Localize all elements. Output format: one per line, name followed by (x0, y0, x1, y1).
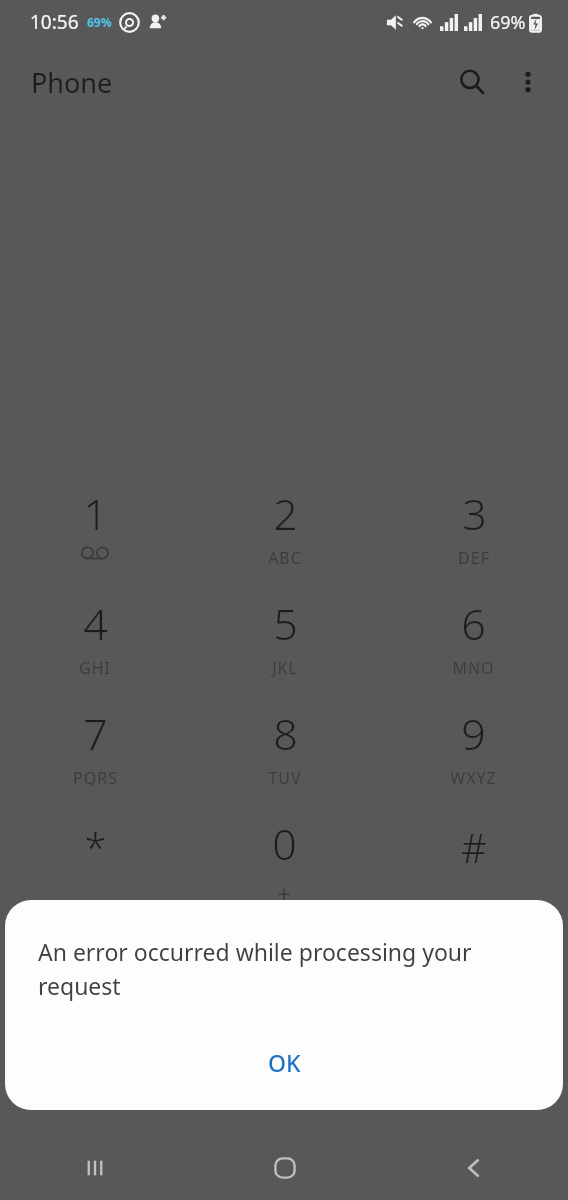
staticText: DEF (458, 547, 490, 569)
staticText: 1 (83, 484, 108, 543)
button[interactable]: 7 (0, 688, 190, 798)
button[interactable]: 2 (190, 468, 379, 578)
staticText: An error occurred while processing your … (38, 936, 503, 1001)
staticText: MNO (452, 657, 495, 679)
staticText: PQRS (73, 767, 118, 789)
staticText: * (84, 820, 107, 874)
staticText: 3 (462, 484, 487, 543)
staticText: 4 (83, 594, 108, 653)
button[interactable]: Home (190, 1135, 379, 1200)
button[interactable]: More options (500, 54, 556, 110)
staticText: 69% (490, 10, 526, 35)
staticText: Phone (31, 64, 113, 101)
staticText: GHI (79, 657, 111, 679)
button[interactable]: 8 (190, 688, 379, 798)
button[interactable]: 0 (190, 798, 379, 908)
staticText: TUV (268, 767, 302, 789)
staticText: 8 (273, 704, 298, 763)
button[interactable]: Recent apps (0, 1135, 190, 1200)
button[interactable]: * (0, 798, 190, 908)
staticText: # (461, 820, 487, 874)
staticText: 10:56 (30, 9, 79, 35)
button[interactable]: 9 (379, 688, 568, 798)
button[interactable]: OK (240, 1037, 329, 1088)
staticText: 9 (461, 704, 486, 763)
staticText: 0 (272, 814, 297, 873)
button[interactable]: 5 (190, 578, 379, 688)
button[interactable]: Search (444, 54, 500, 110)
button[interactable]: Back (379, 1135, 568, 1200)
button[interactable]: # (379, 798, 568, 908)
staticText: 5 (273, 594, 298, 653)
button[interactable]: 6 (379, 578, 568, 688)
staticText: + (277, 877, 292, 908)
staticText: WXYZ (450, 767, 497, 789)
staticText: 6 (461, 594, 486, 653)
staticText: 2 (273, 484, 298, 543)
staticText: ABC (268, 547, 302, 569)
staticText: OK (268, 1047, 301, 1078)
button[interactable]: 4 (0, 578, 190, 688)
staticText: JKL (272, 657, 298, 679)
staticText: 7 (83, 704, 108, 763)
button[interactable]: 1 (0, 468, 190, 578)
staticText: 69% (87, 14, 112, 30)
button[interactable]: 3 (379, 468, 568, 578)
